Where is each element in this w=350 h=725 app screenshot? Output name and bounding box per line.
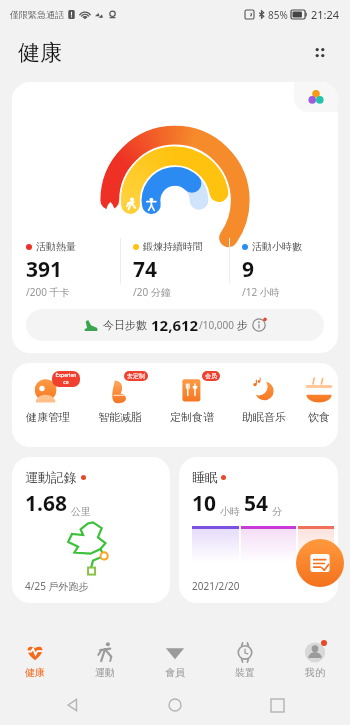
staticText: 智能减脂 xyxy=(98,410,142,424)
staticText: 裝置 xyxy=(235,666,255,679)
staticText: 1.68 xyxy=(25,489,67,518)
button[interactable]: Add record xyxy=(296,539,344,587)
button[interactable]: 我的 xyxy=(280,633,350,685)
staticText: 僅限緊急通話 xyxy=(10,9,64,20)
button[interactable]: Experience xyxy=(12,373,84,447)
button[interactable]: 今日步數 xyxy=(26,309,324,341)
staticText: 步 xyxy=(237,318,248,332)
staticText: /200 千卡 xyxy=(26,285,70,299)
staticText: 去定制 xyxy=(127,372,145,380)
staticText: 会员 xyxy=(205,372,217,380)
staticText: /12 小時 xyxy=(242,285,280,299)
staticText: 54 xyxy=(244,489,269,518)
button[interactable]: 助眠音乐 xyxy=(228,373,300,447)
staticText: 12,612 xyxy=(151,315,199,335)
staticText: Experience xyxy=(55,372,77,386)
staticText: 活動熱量 xyxy=(36,240,76,253)
button[interactable]: More options xyxy=(300,33,340,73)
staticText: 健康管理 xyxy=(26,410,70,424)
button[interactable]: 會員 xyxy=(140,633,210,685)
staticText: 我的 xyxy=(305,666,325,679)
staticText: 21:24 xyxy=(311,7,340,22)
staticText: 運動記錄 xyxy=(25,469,77,485)
staticText: 健康 xyxy=(25,666,45,679)
staticText: 鍛煉持續時間 xyxy=(143,240,203,253)
staticText: 85% xyxy=(268,8,288,22)
button[interactable]: 運動記錄 xyxy=(12,457,170,603)
staticText: 會員 xyxy=(165,666,185,679)
staticText: 9 xyxy=(242,255,255,284)
staticText: /20 分鐘 xyxy=(133,285,171,299)
staticText: 運動 xyxy=(95,666,115,679)
staticText: 定制食谱 xyxy=(170,410,214,424)
staticText: 391 xyxy=(26,255,63,284)
staticText: 2021/2/20 xyxy=(192,579,240,593)
staticText: 饮食 xyxy=(308,410,330,424)
staticText: 分 xyxy=(272,505,282,518)
button[interactable]: Activity detail xyxy=(12,82,338,353)
button[interactable]: 裝置 xyxy=(210,633,280,685)
button[interactable]: 去定制 xyxy=(84,373,156,447)
button[interactable]: 会员 xyxy=(156,373,228,447)
staticText: /10,000 xyxy=(199,318,234,332)
staticText: 健康 xyxy=(18,39,62,67)
button[interactable]: 饮食 xyxy=(300,373,338,447)
button[interactable]: Home xyxy=(162,692,188,718)
staticText: 睡眠 xyxy=(192,469,218,485)
staticText: 今日步數 xyxy=(103,318,147,332)
staticText: 小時 xyxy=(220,505,240,518)
button[interactable]: 睡眠 xyxy=(179,457,338,603)
button[interactable]: 健康 xyxy=(0,633,70,685)
button[interactable]: 活動小時數 xyxy=(230,238,338,299)
button[interactable]: 運動 xyxy=(70,633,140,685)
staticText: 公里 xyxy=(71,505,91,518)
button[interactable]: Activity detail xyxy=(294,82,338,112)
staticText: 4/25 戶外跑步 xyxy=(25,579,89,593)
button[interactable]: 鍛煉持續時間 xyxy=(121,238,229,299)
staticText: 助眠音乐 xyxy=(242,410,286,424)
button[interactable]: 活動熱量 xyxy=(12,238,120,299)
staticText: 10 xyxy=(192,489,217,518)
button[interactable]: Recents xyxy=(264,692,290,718)
staticText: 74 xyxy=(133,255,158,284)
staticText: 活動小時數 xyxy=(252,240,302,253)
button[interactable]: Back xyxy=(60,692,86,718)
